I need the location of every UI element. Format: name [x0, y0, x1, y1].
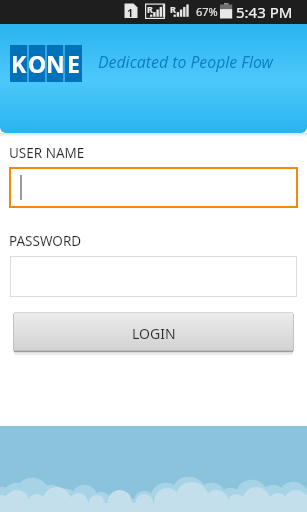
staticText: R	[147, 3, 153, 15]
button[interactable]	[9, 167, 298, 208]
button[interactable]: LOGIN	[13, 311, 294, 356]
staticText: USER NAME	[9, 144, 85, 162]
staticText: 1	[127, 5, 134, 20]
staticText: K	[11, 48, 27, 79]
staticText: N	[46, 48, 64, 79]
staticText: 67%	[196, 4, 218, 19]
staticText: E	[67, 48, 80, 79]
staticText: LOGIN	[132, 324, 176, 343]
staticText: PASSWORD	[9, 232, 82, 250]
staticText: R	[170, 3, 176, 15]
staticText: 5:43 PM	[236, 2, 293, 22]
staticText: Dedicated to People Flow	[98, 51, 273, 73]
staticText: O	[28, 48, 46, 79]
button[interactable]	[10, 256, 297, 297]
